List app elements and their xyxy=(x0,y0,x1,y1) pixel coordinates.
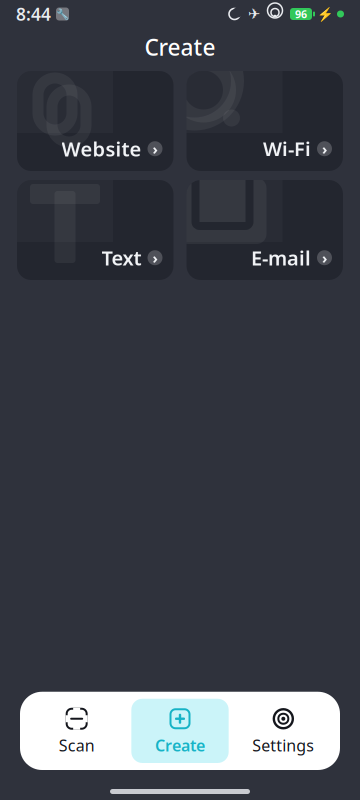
staticText: Text xyxy=(101,244,141,271)
staticText: Website xyxy=(61,135,141,162)
staticText: Settings xyxy=(252,735,314,756)
staticText: › xyxy=(152,248,157,267)
staticText: › xyxy=(152,139,157,158)
staticText: ⚡ xyxy=(317,6,334,22)
button[interactable]: Wi-Fi xyxy=(186,71,343,171)
staticText: Scan xyxy=(59,735,95,756)
staticText: ✈ xyxy=(248,6,260,22)
staticText: Create xyxy=(155,735,205,756)
staticText: › xyxy=(322,248,327,267)
button[interactable]: Website xyxy=(17,71,173,171)
button[interactable]: Create xyxy=(131,699,229,763)
button[interactable]: Scan xyxy=(28,699,125,763)
staticText: Wi-Fi xyxy=(263,135,311,162)
staticText: Create xyxy=(144,32,215,62)
staticText: 96 xyxy=(295,7,307,21)
staticText: E-mail xyxy=(251,244,311,271)
staticText: 8:44 xyxy=(16,2,51,25)
staticText: 🔧 xyxy=(56,8,69,20)
button[interactable]: Text xyxy=(17,180,173,280)
button[interactable]: E-mail xyxy=(186,180,343,280)
staticText: › xyxy=(322,139,327,158)
button[interactable]: Settings xyxy=(235,699,332,763)
